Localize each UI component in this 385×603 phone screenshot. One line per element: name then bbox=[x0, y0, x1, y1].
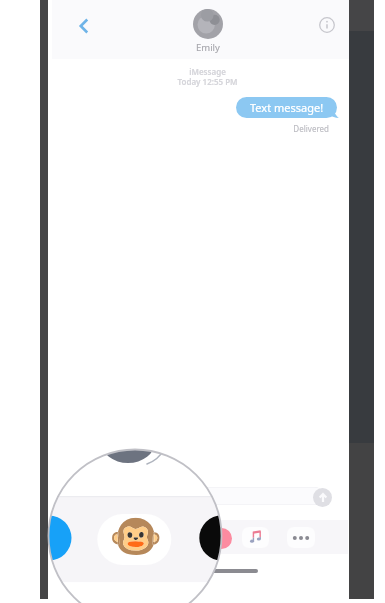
staticText: Emily bbox=[196, 41, 220, 53]
button[interactable]: Details bbox=[314, 12, 340, 38]
button[interactable]: Music app bbox=[211, 528, 232, 549]
staticText: Delivered bbox=[51, 123, 329, 134]
button[interactable]: Text message! bbox=[236, 97, 337, 118]
button[interactable]: Back bbox=[70, 12, 97, 39]
button[interactable]: Emily bbox=[188, 9, 228, 53]
button[interactable]: Send bbox=[313, 488, 332, 507]
button[interactable]: Music bbox=[242, 527, 269, 548]
staticText: Text message! bbox=[250, 100, 324, 115]
button[interactable] bbox=[68, 487, 324, 505]
staticText: iMessage Today 12:55 PM bbox=[51, 66, 364, 87]
button[interactable]: More apps bbox=[287, 527, 315, 548]
staticText: 🐵 bbox=[109, 511, 163, 561]
